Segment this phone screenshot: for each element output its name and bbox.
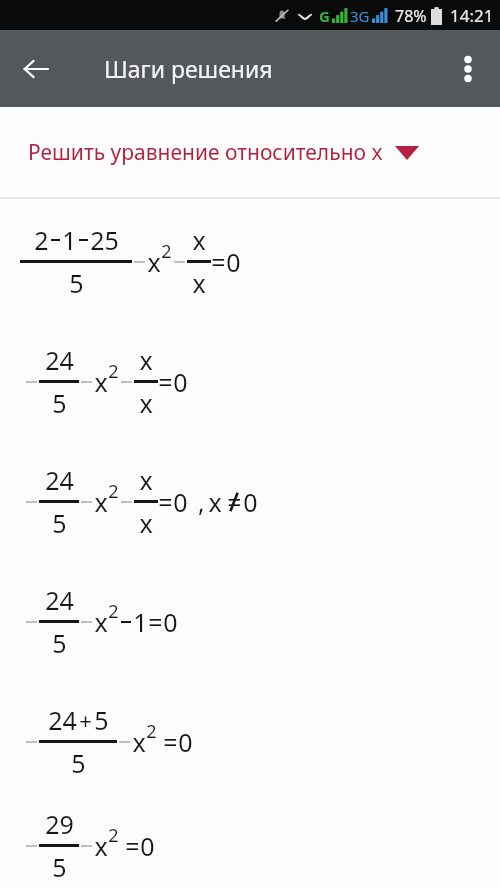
staticText: x: [139, 506, 153, 540]
staticText: =: [125, 829, 140, 863]
staticText: 5: [52, 506, 67, 540]
staticText: 14:21: [450, 4, 494, 27]
staticText: 5: [69, 266, 84, 300]
staticText: x: [147, 245, 161, 279]
button[interactable]: 24: [0, 561, 500, 681]
staticText: x: [192, 223, 206, 257]
staticText: 2: [108, 359, 119, 384]
staticText: 0: [163, 605, 178, 639]
button[interactable]: 24: [0, 441, 500, 561]
button[interactable]: Назад: [8, 41, 64, 97]
staticText: x: [94, 365, 108, 399]
staticText: 5: [94, 703, 109, 737]
staticText: G: [319, 6, 330, 26]
staticText: x: [139, 463, 153, 497]
button[interactable]: Решить уравнение относительно x: [0, 107, 500, 197]
staticText: 2: [34, 223, 49, 257]
staticText: 24: [48, 703, 77, 737]
staticText: x: [139, 386, 153, 420]
staticText: 0: [226, 245, 241, 279]
staticText: 1: [133, 605, 148, 639]
staticText: =: [158, 365, 173, 399]
staticText: 2: [161, 239, 172, 264]
staticText: x: [94, 485, 108, 519]
staticText: =: [227, 485, 242, 519]
staticText: 24: [45, 463, 74, 497]
staticText: x: [192, 266, 206, 300]
staticText: 2: [108, 823, 119, 848]
staticText: 3G: [350, 6, 370, 26]
staticText: =: [158, 485, 173, 519]
staticText: 2: [108, 479, 119, 504]
staticText: x: [94, 829, 108, 863]
staticText: Решить уравнение относительно x: [28, 138, 383, 167]
staticText: 5: [52, 850, 67, 884]
staticText: 24: [45, 343, 74, 377]
button[interactable]: 29: [0, 801, 500, 889]
staticText: =: [163, 725, 178, 759]
staticText: 25: [90, 223, 119, 257]
button[interactable]: Ещё: [442, 43, 494, 95]
staticText: 5: [71, 746, 86, 780]
staticText: 0: [173, 485, 188, 519]
staticText: 1: [62, 223, 77, 257]
staticText: x: [132, 725, 146, 759]
staticText: 2: [146, 719, 157, 744]
staticText: 0: [173, 365, 188, 399]
staticText: 2: [108, 599, 119, 624]
staticText: 5: [52, 386, 67, 420]
staticText: x: [94, 605, 108, 639]
staticText: x: [139, 343, 153, 377]
staticText: 5: [52, 626, 67, 660]
staticText: +: [79, 705, 92, 735]
button[interactable]: 24: [0, 321, 500, 441]
staticText: 78%: [395, 5, 427, 27]
staticText: Шаги решения: [104, 53, 273, 84]
staticText: 0: [243, 485, 258, 519]
staticText: ,: [188, 485, 208, 519]
staticText: 0: [140, 829, 155, 863]
staticText: x: [208, 485, 222, 519]
staticText: =: [211, 245, 226, 279]
staticText: 29: [45, 807, 74, 841]
staticText: 24: [45, 583, 74, 617]
button[interactable]: 24: [0, 681, 500, 801]
staticText: 0: [178, 725, 193, 759]
button[interactable]: 2: [0, 201, 500, 321]
staticText: =: [148, 605, 163, 639]
